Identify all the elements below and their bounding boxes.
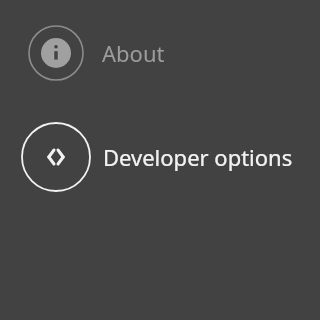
other: Developer options xyxy=(21,122,91,192)
staticText: About xyxy=(102,38,165,68)
button[interactable]: About xyxy=(0,25,320,81)
button[interactable]: Developer options xyxy=(0,122,320,192)
staticText: Developer options xyxy=(103,142,293,172)
